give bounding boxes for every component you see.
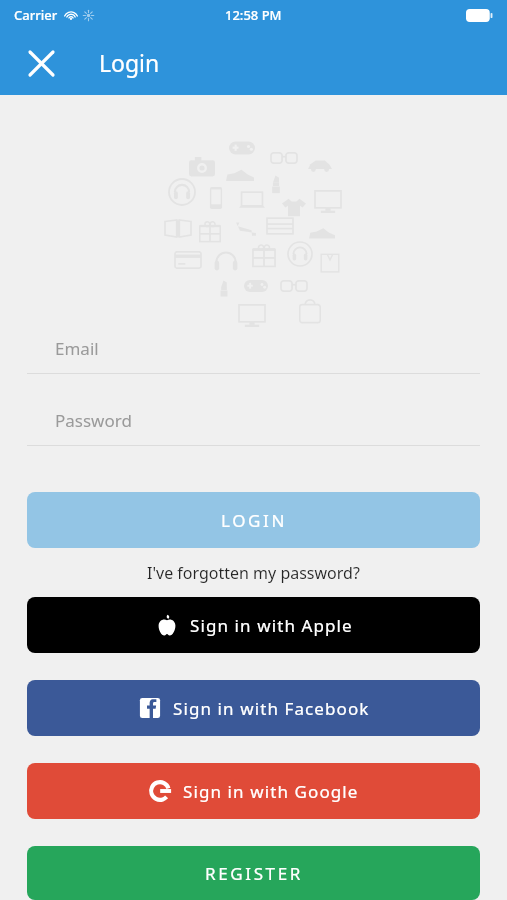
- staticText: Sign in with Google: [183, 780, 359, 803]
- staticText: Email: [55, 337, 99, 360]
- button[interactable]: Sign in with Facebook: [27, 680, 480, 736]
- button[interactable]: Sign in with Apple: [27, 597, 480, 653]
- button[interactable]: I've forgotten my password?: [0, 562, 507, 584]
- staticText: I've forgotten my password?: [147, 562, 360, 584]
- button[interactable]: Sign in with Google: [27, 763, 480, 819]
- button[interactable]: REGISTER: [27, 846, 480, 900]
- button[interactable]: Password: [27, 409, 480, 446]
- staticText: Sign in with Facebook: [173, 697, 370, 720]
- staticText: 12:58 PM: [225, 6, 282, 24]
- button[interactable]: Email: [27, 337, 480, 374]
- staticText: LOGIN: [221, 509, 287, 532]
- staticText: Sign in with Apple: [190, 614, 353, 637]
- staticText: REGISTER: [205, 862, 303, 885]
- button[interactable]: Close: [19, 41, 63, 85]
- staticText: Password: [55, 409, 132, 432]
- button[interactable]: LOGIN: [27, 492, 480, 548]
- staticText: Carrier: [14, 6, 58, 24]
- staticText: Login: [99, 47, 160, 78]
